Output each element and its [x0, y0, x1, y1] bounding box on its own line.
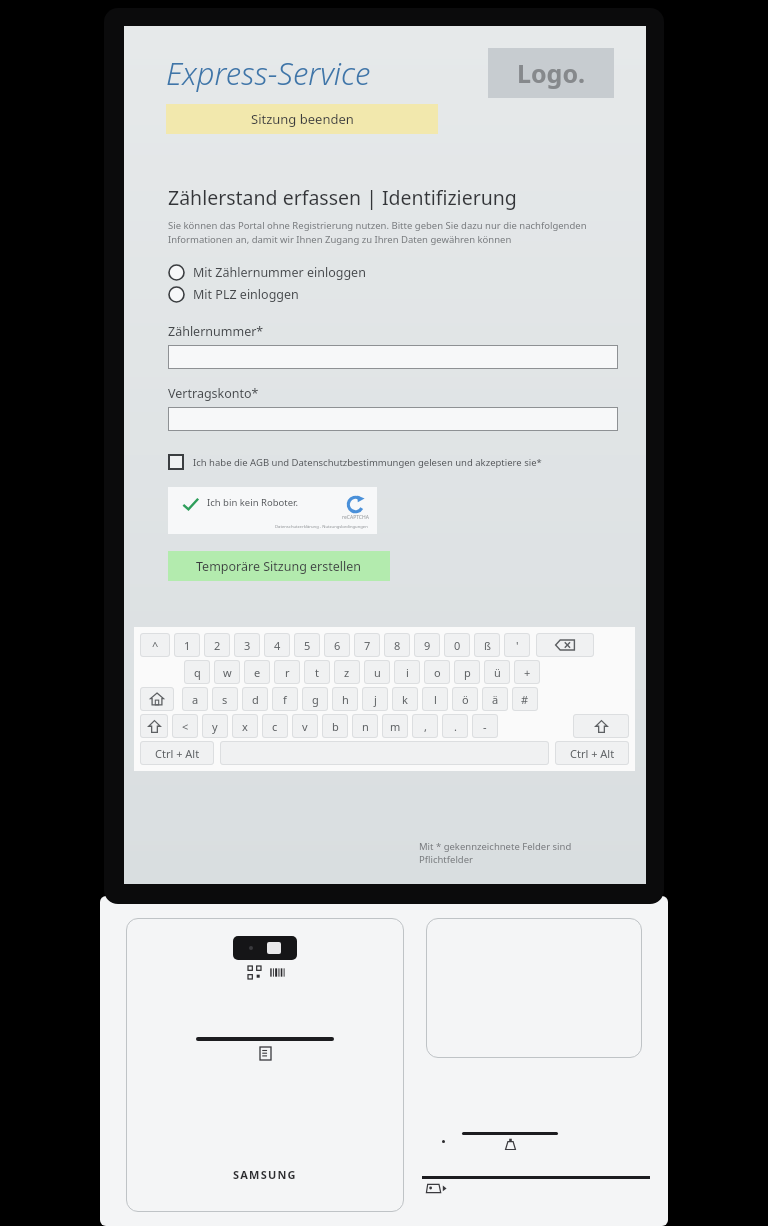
- button[interactable]: #: [512, 687, 538, 711]
- button[interactable]: Mit Zählernummer einloggen: [168, 263, 366, 282]
- button[interactable]: ': [504, 633, 530, 657]
- button[interactable]: v: [292, 714, 318, 738]
- button[interactable]: y: [202, 714, 228, 738]
- staticText: 1: [184, 638, 191, 653]
- button[interactable]: Ich bin kein Roboter.: [168, 487, 377, 534]
- button[interactable]: [168, 345, 618, 369]
- button[interactable]: x: [232, 714, 258, 738]
- button[interactable]: ö: [452, 687, 478, 711]
- button[interactable]: Space: [220, 741, 549, 765]
- staticText: Temporäre Sitzung erstellen: [196, 558, 362, 575]
- staticText: -: [483, 719, 487, 734]
- staticText: 3: [244, 638, 251, 653]
- button[interactable]: Ctrl + Alt: [140, 741, 214, 765]
- staticText: w: [223, 665, 232, 680]
- button[interactable]: b: [322, 714, 348, 738]
- button[interactable]: e: [244, 660, 270, 684]
- staticText: e: [254, 665, 261, 680]
- staticText: 0: [454, 638, 461, 653]
- button[interactable]: Shift: [573, 714, 629, 738]
- button[interactable]: 4: [264, 633, 290, 657]
- button[interactable]: o: [424, 660, 450, 684]
- button[interactable]: 8: [384, 633, 410, 657]
- button[interactable]: 6: [324, 633, 350, 657]
- button[interactable]: l: [422, 687, 448, 711]
- staticText: k: [402, 692, 408, 707]
- staticText: Zählerstand erfassen | Identifizierung: [168, 184, 517, 211]
- staticText: Ich bin kein Roboter.: [207, 496, 298, 509]
- staticText: z: [344, 665, 350, 680]
- staticText: <: [182, 719, 189, 734]
- staticText: 6: [334, 638, 341, 653]
- staticText: p: [464, 665, 471, 680]
- button[interactable]: 5: [294, 633, 320, 657]
- button[interactable]: 1: [174, 633, 200, 657]
- button[interactable]: r: [274, 660, 300, 684]
- button[interactable]: Shift: [140, 714, 168, 738]
- button[interactable]: Sitzung beenden: [166, 104, 438, 134]
- button[interactable]: a: [182, 687, 208, 711]
- button[interactable]: 0: [444, 633, 470, 657]
- button[interactable]: ,: [412, 714, 438, 738]
- button[interactable]: <: [172, 714, 198, 738]
- button[interactable]: t: [304, 660, 330, 684]
- staticText: Datenschutzerklärung - Nutzungsbedingung…: [275, 524, 368, 530]
- button[interactable]: Card reader: [426, 918, 642, 1058]
- button[interactable]: .: [442, 714, 468, 738]
- staticText: reCAPTCHA: [342, 514, 369, 521]
- button[interactable]: w: [214, 660, 240, 684]
- button[interactable]: Backspace: [536, 633, 594, 657]
- staticText: y: [212, 719, 218, 734]
- staticText: 9: [424, 638, 431, 653]
- button[interactable]: Ctrl + Alt: [555, 741, 629, 765]
- staticText: ': [516, 638, 519, 653]
- button[interactable]: Barcode scanner: [233, 936, 297, 960]
- staticText: Express-Service: [166, 52, 371, 94]
- button[interactable]: ü: [484, 660, 510, 684]
- button[interactable]: ä: [482, 687, 508, 711]
- staticText: ,: [424, 719, 427, 734]
- button[interactable]: c: [262, 714, 288, 738]
- button[interactable]: h: [332, 687, 358, 711]
- button[interactable]: +: [514, 660, 540, 684]
- button[interactable]: 2: [204, 633, 230, 657]
- button[interactable]: 7: [354, 633, 380, 657]
- button[interactable]: [168, 407, 618, 431]
- staticText: n: [362, 719, 369, 734]
- staticText: Sie können das Portal ohne Registrierung…: [168, 219, 618, 245]
- staticText: ü: [494, 665, 501, 680]
- button[interactable]: f: [272, 687, 298, 711]
- staticText: m: [390, 719, 401, 734]
- button[interactable]: u: [364, 660, 390, 684]
- button[interactable]: d: [242, 687, 268, 711]
- button[interactable]: m: [382, 714, 408, 738]
- staticText: ^: [152, 638, 159, 653]
- staticText: q: [194, 665, 201, 680]
- staticText: Mit Zählernummer einloggen: [193, 264, 366, 281]
- button[interactable]: Ich habe die AGB und Datenschutzbestimmu…: [168, 454, 542, 470]
- button[interactable]: Mit PLZ einloggen: [168, 285, 299, 304]
- button[interactable]: Home: [140, 687, 174, 711]
- button[interactable]: n: [352, 714, 378, 738]
- button[interactable]: p: [454, 660, 480, 684]
- staticText: 8: [394, 638, 401, 653]
- button[interactable]: j: [362, 687, 388, 711]
- button[interactable]: q: [184, 660, 210, 684]
- button[interactable]: i: [394, 660, 420, 684]
- button[interactable]: k: [392, 687, 418, 711]
- button[interactable]: 9: [414, 633, 440, 657]
- staticText: 4: [274, 638, 281, 653]
- button[interactable]: Temporäre Sitzung erstellen: [168, 551, 390, 581]
- staticText: Mit PLZ einloggen: [193, 286, 299, 303]
- staticText: s: [222, 692, 228, 707]
- button[interactable]: ^: [140, 633, 170, 657]
- button[interactable]: s: [212, 687, 238, 711]
- button[interactable]: -: [472, 714, 498, 738]
- button[interactable]: z: [334, 660, 360, 684]
- button[interactable]: 3: [234, 633, 260, 657]
- button[interactable]: ß: [474, 633, 500, 657]
- staticText: ö: [462, 692, 469, 707]
- staticText: x: [242, 719, 248, 734]
- staticText: Logo.: [517, 56, 586, 90]
- button[interactable]: g: [302, 687, 328, 711]
